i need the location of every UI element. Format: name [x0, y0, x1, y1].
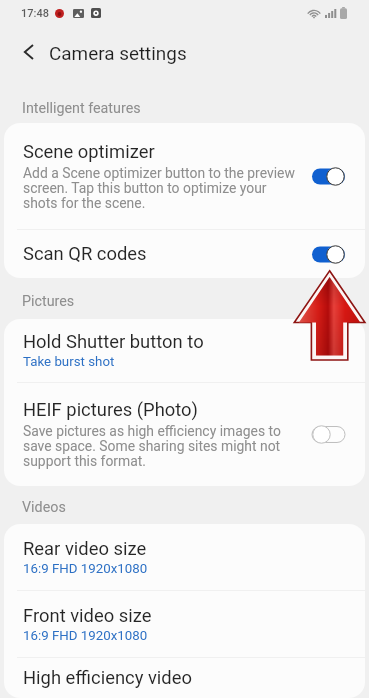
staticText: Scene optimizer [23, 141, 155, 163]
staticText: 16:9 FHD 1920x1080 [23, 561, 148, 577]
staticText: Hold Shutter button to [23, 331, 204, 353]
button[interactable]: HEIF pictures (Photo) [4, 383, 365, 486]
staticText: Save pictures as high efficiency images … [23, 423, 299, 470]
button[interactable]: Back [12, 36, 44, 68]
staticText: Rear video size [23, 538, 147, 560]
staticText: Intelligent features [22, 100, 141, 117]
staticText: Camera settings [49, 42, 187, 64]
staticText: Videos [22, 499, 66, 516]
button[interactable]: Scan QR codes [4, 230, 365, 278]
button[interactable]: High efficiency video [4, 658, 365, 698]
staticText: High efficiency video [23, 667, 192, 689]
staticText: Pictures [22, 293, 75, 310]
staticText: 17:48 [21, 7, 49, 20]
staticText: Take burst shot [23, 354, 115, 370]
staticText: Add a Scene optimizer button to the prev… [23, 165, 299, 212]
staticText: Front video size [23, 605, 152, 627]
staticText: HEIF pictures (Photo) [23, 399, 198, 421]
staticText: 16:9 FHD 1920x1080 [23, 628, 148, 644]
button[interactable]: Rear video size [4, 524, 365, 590]
staticText: Scan QR codes [23, 243, 147, 265]
button[interactable]: Scene optimizer [4, 123, 365, 229]
button[interactable]: Hold Shutter button to [4, 319, 365, 382]
button[interactable]: Front video size [4, 591, 365, 657]
